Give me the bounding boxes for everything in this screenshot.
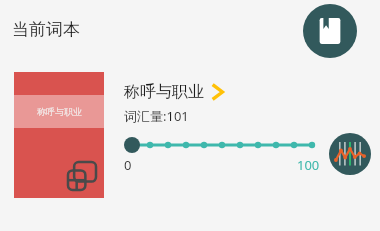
button[interactable]: 称呼与职业 bbox=[124, 82, 228, 102]
staticText: 称呼与职业 bbox=[37, 106, 82, 117]
button[interactable]: 称呼与职业 bbox=[14, 72, 104, 198]
staticText: 0 bbox=[124, 156, 132, 174]
staticText: 词汇量:101 bbox=[124, 107, 189, 125]
staticText: 100 bbox=[297, 156, 320, 174]
button[interactable]: Word books bbox=[303, 4, 357, 58]
button[interactable] bbox=[124, 135, 316, 155]
staticText: 当前词本 bbox=[12, 19, 80, 40]
staticText: 称呼与职业 bbox=[124, 82, 204, 102]
button[interactable]: Statistics bbox=[329, 133, 371, 175]
